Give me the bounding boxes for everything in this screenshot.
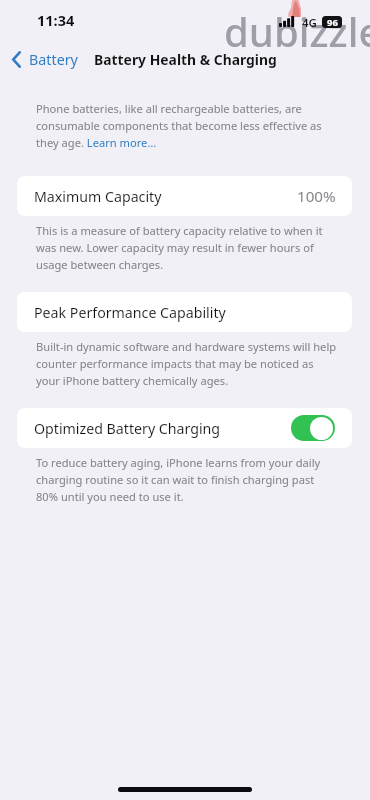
staticText: Optimized Battery Charging: [34, 419, 221, 438]
staticText: This is a measure of battery capacity re…: [36, 222, 338, 273]
button[interactable]: Battery: [6, 46, 86, 73]
staticText: 100%: [297, 186, 336, 207]
staticText: Battery Health & Charging: [94, 50, 277, 69]
staticText: To reduce battery aging, iPhone learns f…: [36, 454, 338, 505]
staticText: 11:34: [37, 10, 75, 30]
staticText: Battery: [29, 50, 78, 69]
staticText: Phone batteries, like all rechargeable b…: [36, 100, 338, 151]
staticText: Built-in dynamic software and hardware s…: [36, 338, 338, 389]
button[interactable]: Peak Performance Capability: [17, 292, 352, 332]
staticText: 4G: [302, 15, 317, 31]
staticText: Maximum Capacity: [34, 187, 162, 206]
button[interactable]: Maximum Capacity: [17, 176, 352, 216]
button[interactable]: Optimized Battery Charging toggle: [291, 415, 335, 441]
staticText: Peak Performance Capability: [34, 303, 226, 322]
staticText: 96: [327, 16, 338, 28]
button[interactable]: Optimized Battery Charging: [17, 408, 352, 448]
staticText: dubizzle: [224, 4, 370, 58]
